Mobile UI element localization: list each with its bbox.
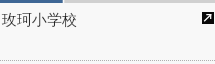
button[interactable]: Open in new window: [202, 12, 214, 24]
button[interactable]: 玫珂小学校: [2, 11, 77, 30]
